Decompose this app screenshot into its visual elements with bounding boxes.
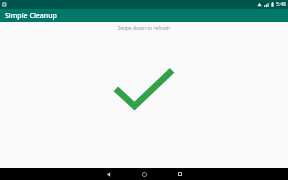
button[interactable]: Back	[90, 168, 126, 180]
staticText: Swipe down to refresh	[0, 25, 288, 32]
staticText: 5:48	[276, 1, 286, 8]
button[interactable]: Home	[126, 168, 162, 180]
button[interactable]: Recents	[162, 168, 198, 180]
staticText: Simple Cleanup	[5, 11, 57, 21]
